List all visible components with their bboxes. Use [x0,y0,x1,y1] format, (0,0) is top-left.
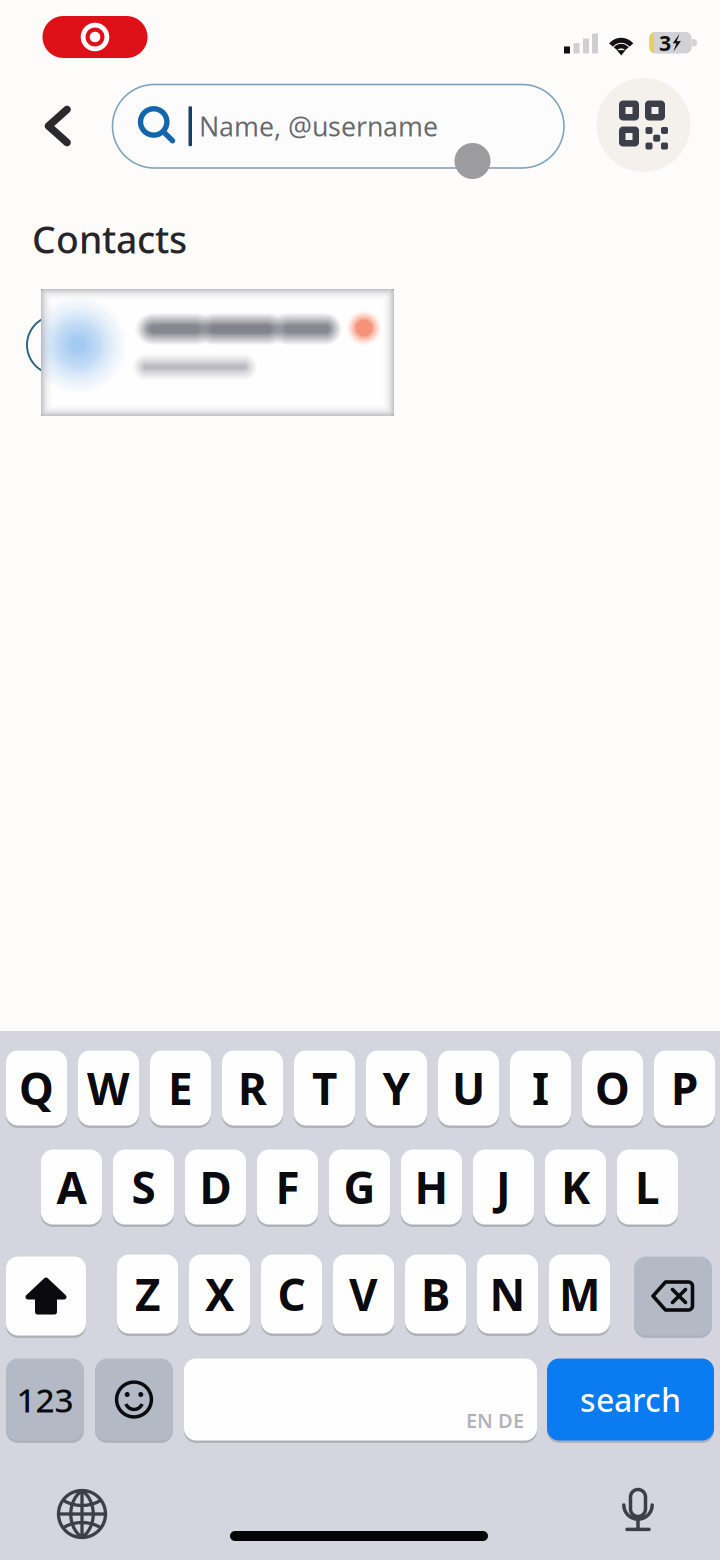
button[interactable]: N [477,1253,538,1335]
staticText: V [349,1265,378,1323]
button[interactable]: B [405,1253,466,1335]
button[interactable]: D [185,1148,246,1226]
button[interactable]: T [294,1049,355,1127]
button[interactable]: Z [117,1253,178,1335]
button[interactable]: C [261,1253,322,1335]
staticText: E [168,1059,193,1117]
staticText: N [489,1265,525,1323]
staticText: B [421,1265,450,1323]
button[interactable]: G [329,1148,390,1226]
staticText: M [559,1265,600,1323]
staticText: F [275,1158,299,1216]
button[interactable]: U [438,1049,499,1127]
button[interactable]: S [113,1148,174,1226]
button[interactable]: Y [366,1049,427,1127]
button[interactable]: K [545,1148,606,1226]
staticText: U [452,1059,485,1117]
staticText: X [205,1265,234,1323]
button[interactable] [634,1255,712,1337]
button[interactable]: EN DE [184,1357,537,1442]
button[interactable]: F [257,1148,318,1226]
button[interactable]: L [617,1148,678,1226]
button[interactable]: W [78,1049,139,1127]
button[interactable]: J [473,1148,534,1226]
staticText: A [56,1158,86,1216]
button[interactable]: Change keyboard [57,1489,107,1539]
button[interactable]: Back [28,92,88,160]
staticText: O [595,1059,630,1117]
staticText: T [312,1059,337,1117]
button[interactable]: Shift [6,1255,86,1337]
button[interactable]: Name, @username [112,84,564,168]
button[interactable]: R [222,1049,283,1127]
staticText: S [131,1158,155,1216]
button[interactable]: I [510,1049,571,1127]
button[interactable]: 123 [6,1357,84,1442]
button[interactable] [6,1255,86,1337]
button[interactable]: Dictate [622,1485,654,1531]
button[interactable]: H [401,1148,462,1226]
staticText: Q [19,1059,54,1117]
staticText: EN DE [466,1407,524,1433]
button[interactable]: M [549,1253,610,1335]
staticText: G [343,1158,375,1216]
button[interactable] [41,289,394,416]
staticText: P [671,1059,698,1117]
button[interactable]: A [41,1148,102,1226]
staticText: Name, @username [199,108,438,144]
staticText: R [238,1059,267,1117]
staticText: search [580,1378,681,1421]
button[interactable]: P [654,1049,715,1127]
button[interactable]: Scan QR code [596,78,690,172]
staticText: 3 [659,29,671,57]
staticText: I [532,1059,549,1117]
staticText: C [277,1265,305,1323]
staticText: Y [382,1059,410,1117]
staticText: Contacts [32,214,187,264]
button[interactable]: search [547,1357,714,1442]
button[interactable]: Delete [634,1255,712,1337]
staticText: W [87,1059,130,1117]
button[interactable]: Q [6,1049,67,1127]
staticText: D [199,1158,231,1216]
staticText: Z [135,1265,160,1323]
button[interactable]: E [150,1049,211,1127]
button[interactable]: V [333,1253,394,1335]
staticText: H [414,1158,448,1216]
button[interactable]: O [582,1049,643,1127]
staticText: L [635,1158,660,1216]
staticText: K [561,1158,590,1216]
staticText: 123 [16,1377,73,1422]
staticText: J [496,1158,511,1216]
button[interactable] [95,1357,173,1442]
button[interactable]: X [189,1253,250,1335]
